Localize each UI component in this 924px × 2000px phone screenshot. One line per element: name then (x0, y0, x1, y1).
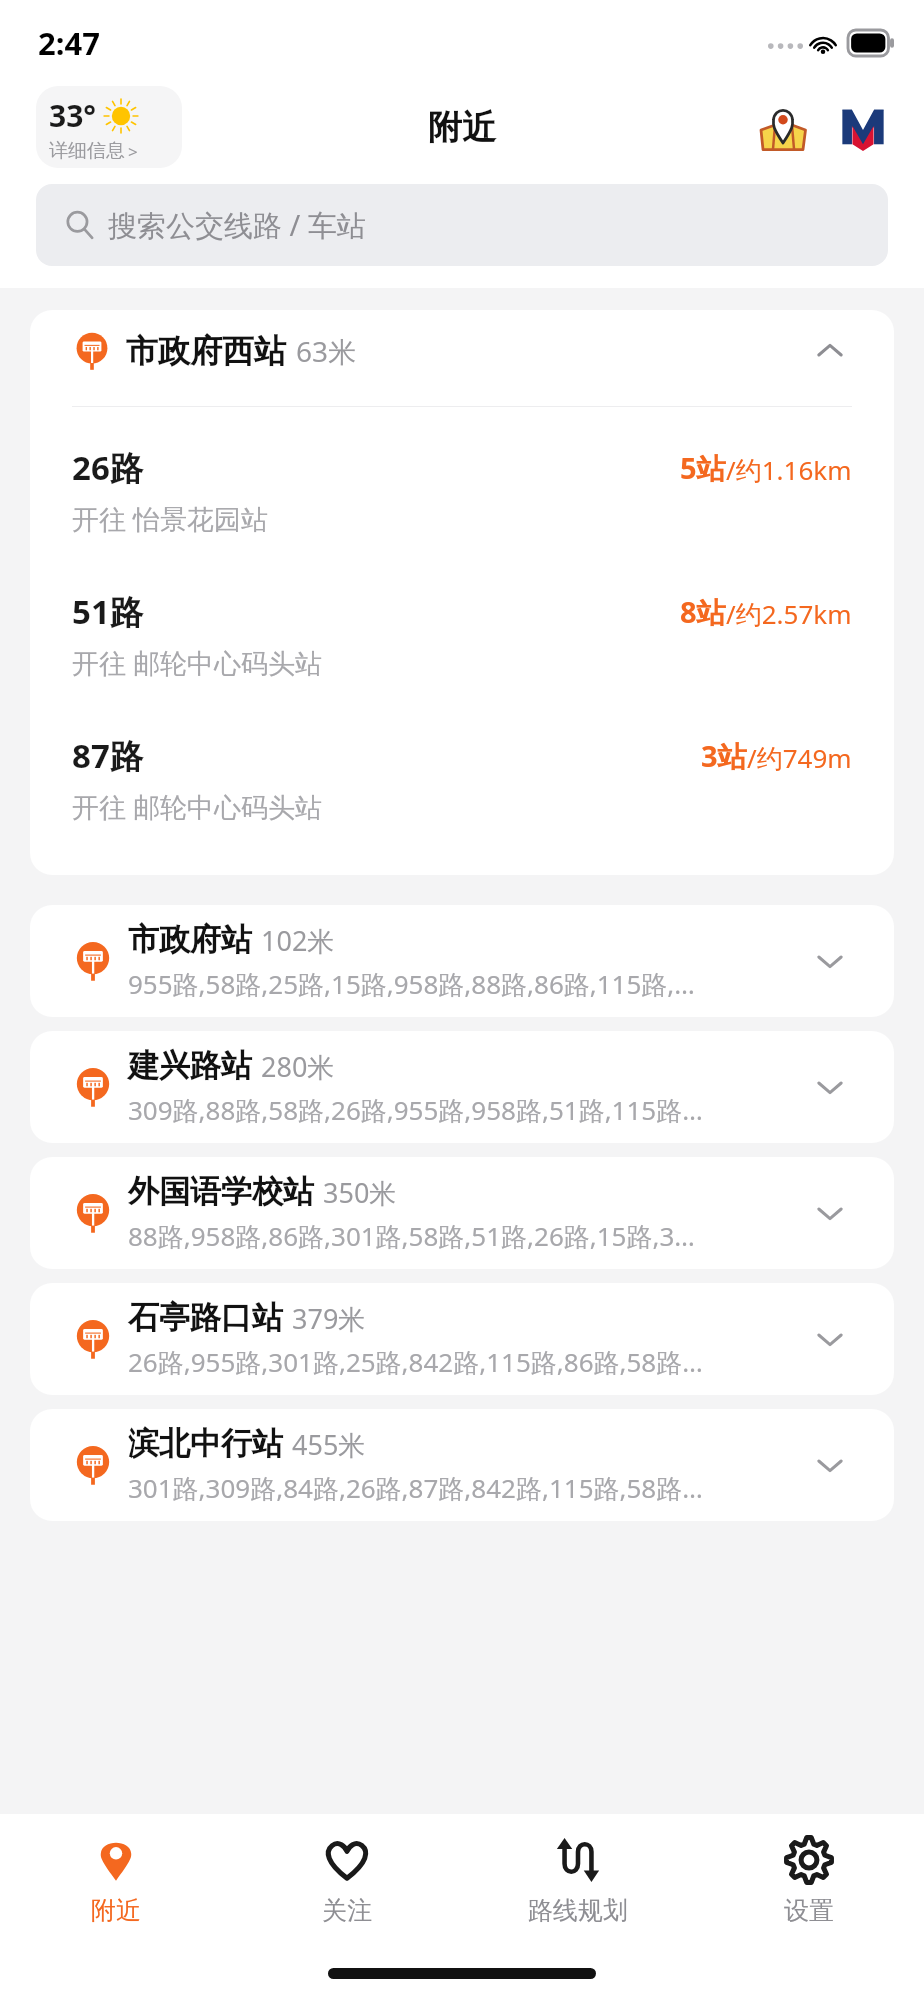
staticText: /约1.16km (726, 452, 852, 488)
staticText: 455米 (292, 1426, 366, 1463)
button[interactable]: 设置 (693, 1814, 924, 1946)
staticText: 26路,955路,301路,25路,842路,115路,86路,58路… (128, 1344, 703, 1380)
staticText: 8站 (680, 592, 726, 632)
staticText: 102米 (261, 922, 335, 959)
staticText: 955路,58路,25路,15路,958路,88路,86路,115路,… (128, 966, 695, 1002)
staticText: 350米 (323, 1174, 397, 1211)
staticText: 建兴路站 (128, 1046, 252, 1085)
staticText: 开往 邮轮中心码头站 (72, 644, 323, 681)
staticText: 路线规划 (528, 1895, 628, 1926)
staticText: 3站 (701, 736, 747, 776)
staticText: /约749m (747, 740, 852, 776)
button[interactable]: Metro (832, 96, 894, 158)
button[interactable]: 33° (36, 86, 182, 168)
other: Expand (808, 1191, 852, 1235)
staticText: 87路 (72, 733, 143, 778)
staticText: 外国语学校站 (128, 1172, 314, 1211)
other: Expand (808, 1443, 852, 1487)
staticText: /约2.57km (726, 596, 852, 632)
button[interactable]: 滨北中行站 (30, 1409, 894, 1521)
staticText: 开往 邮轮中心码头站 (72, 788, 323, 825)
staticText: 5站 (680, 448, 726, 488)
button[interactable]: 建兴路站 (30, 1031, 894, 1143)
button[interactable]: 石亭路口站 (30, 1283, 894, 1395)
staticText: 详细信息 (49, 139, 125, 163)
staticText: 63米 (296, 332, 357, 370)
staticText: 市政府西站 (126, 331, 286, 371)
staticText: 379米 (292, 1300, 366, 1337)
button[interactable]: 市政府西站 (30, 310, 894, 392)
staticText: 33° (49, 95, 97, 136)
staticText: 280米 (261, 1048, 335, 1085)
button[interactable]: 路线规划 (462, 1814, 693, 1946)
staticText: 309路,88路,58路,26路,955路,958路,51路,115路… (128, 1092, 703, 1128)
button[interactable]: 51路 (30, 585, 894, 685)
staticText: 滨北中行站 (128, 1424, 283, 1463)
staticText: 市政府站 (128, 920, 252, 959)
button[interactable]: Map (752, 96, 814, 158)
other: Expand (808, 1065, 852, 1109)
other: Expand (808, 939, 852, 983)
staticText: 51路 (72, 589, 143, 634)
staticText: > (128, 140, 138, 163)
staticText: 设置 (784, 1895, 834, 1926)
button[interactable]: 关注 (231, 1814, 462, 1946)
other: Expand (808, 1317, 852, 1361)
staticText: 301路,309路,84路,26路,87路,842路,115路,58路… (128, 1470, 703, 1506)
staticText: 开往 怡景花园站 (72, 500, 269, 537)
staticText: 2:47 (38, 22, 100, 64)
staticText: 搜索公交线路 / 车站 (108, 205, 366, 245)
button[interactable]: 附近 (0, 1814, 231, 1946)
button[interactable]: 26路 (30, 441, 894, 541)
staticText: 附近 (428, 106, 496, 149)
staticText: 关注 (322, 1895, 372, 1926)
staticText: 26路 (72, 445, 143, 490)
button[interactable]: 市政府站 (30, 905, 894, 1017)
button[interactable]: 搜索公交线路 / 车站 (36, 184, 888, 266)
button[interactable]: 87路 (30, 729, 894, 829)
staticText: 附近 (91, 1895, 141, 1926)
staticText: 88路,958路,86路,301路,58路,51路,26路,15路,3… (128, 1218, 695, 1254)
other: Collapse (808, 329, 852, 373)
staticText: 石亭路口站 (128, 1298, 283, 1337)
button[interactable]: 外国语学校站 (30, 1157, 894, 1269)
